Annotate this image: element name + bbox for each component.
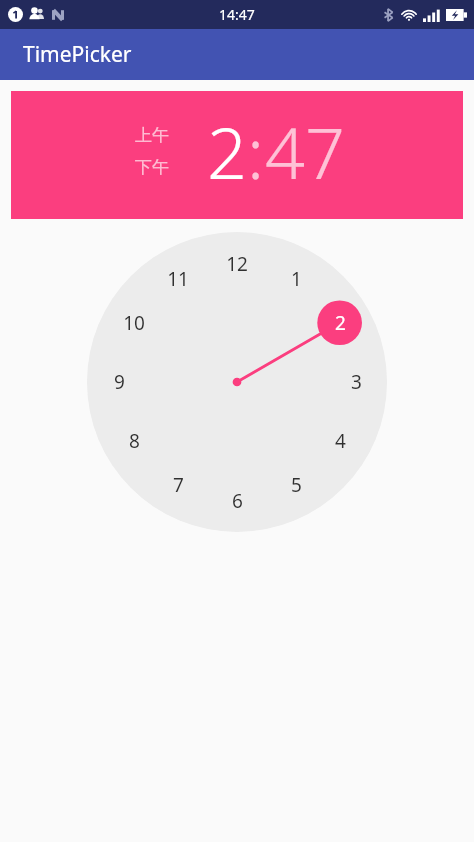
staticText: 4 xyxy=(335,428,346,454)
staticText: 3 xyxy=(351,369,362,395)
button[interactable]: 10 xyxy=(118,307,150,339)
staticText: 下午 xyxy=(135,157,169,178)
staticText: 2 xyxy=(335,310,346,336)
button[interactable]: 7 xyxy=(162,469,194,501)
button[interactable]: 5 xyxy=(280,469,312,501)
staticText: 14:47 xyxy=(219,5,255,24)
button[interactable]: 下午 xyxy=(130,155,174,180)
button[interactable]: 1 xyxy=(280,263,312,295)
staticText: 2 xyxy=(207,104,247,199)
button[interactable]: 3 xyxy=(340,366,372,398)
staticText: 上午 xyxy=(135,125,169,146)
button[interactable]: 12 xyxy=(221,248,253,280)
staticText: 11 xyxy=(167,266,189,292)
staticText: 7 xyxy=(173,472,184,498)
staticText: 9 xyxy=(114,369,125,395)
button[interactable]: 4 xyxy=(324,425,356,457)
staticText: : xyxy=(247,104,265,199)
staticText: 8 xyxy=(129,428,140,454)
button[interactable]: 6 xyxy=(221,485,253,517)
staticText: 5 xyxy=(291,472,302,498)
staticText: TimePicker xyxy=(23,40,132,69)
staticText: 1 xyxy=(291,266,302,292)
staticText: 6 xyxy=(232,488,243,514)
button[interactable]: 47 xyxy=(265,104,345,199)
button[interactable]: 11 xyxy=(162,263,194,295)
button[interactable]: 8 xyxy=(118,425,150,457)
button[interactable]: 2 xyxy=(207,104,247,199)
staticText: 47 xyxy=(265,104,345,199)
button[interactable]: 上午 xyxy=(130,123,174,148)
staticText: 12 xyxy=(226,251,248,277)
button[interactable]: 2 xyxy=(324,307,356,339)
button[interactable]: Clock dial, select hour xyxy=(87,232,387,532)
staticText: 10 xyxy=(123,310,145,336)
button[interactable]: 9 xyxy=(103,366,135,398)
